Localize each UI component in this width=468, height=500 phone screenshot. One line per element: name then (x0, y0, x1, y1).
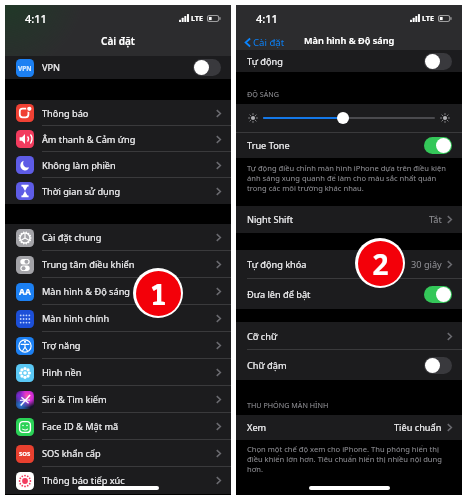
staticText: Màn hình & Độ sáng (42, 285, 130, 298)
button[interactable]: Xem (236, 415, 462, 440)
staticText: True Tone (247, 139, 290, 152)
staticText: Cài đặt (101, 34, 135, 48)
staticText: Tự động (247, 55, 283, 68)
button[interactable]: VPN (5, 56, 231, 79)
staticText: Chọn một chế độ xem cho iPhone. Thu phón… (247, 444, 456, 472)
button[interactable]: Chữ đậm (236, 350, 462, 380)
button[interactable]: True Tone (236, 132, 462, 158)
staticText: Thông báo tiếp xúc (42, 474, 125, 487)
staticText: Tắt (429, 213, 442, 226)
staticText: Âm thanh & Cảm ứng (42, 133, 136, 146)
staticText: Cài đặt chung (42, 231, 102, 244)
button[interactable]: Tự động khóa (236, 250, 462, 279)
button[interactable]: Thông báo (5, 100, 231, 126)
staticText: SOS khẩn cấp (42, 447, 101, 460)
button[interactable]: Turn off (424, 286, 452, 303)
staticText: Xem (247, 421, 267, 434)
button[interactable]: Face ID & Mật mã (5, 413, 231, 440)
staticText: 2 (372, 245, 389, 283)
staticText: Face ID & Mật mã (42, 420, 119, 433)
staticText: Đưa lên để bật (247, 288, 311, 301)
staticText: 4:11 (256, 11, 278, 26)
button[interactable]: SOS (5, 440, 231, 467)
staticText: LTE (422, 13, 435, 23)
button[interactable]: Siri & Tìm kiếm (5, 386, 231, 413)
staticText: Chữ đậm (247, 359, 287, 372)
button[interactable]: Turn off (424, 137, 452, 154)
staticText: Tự động điều chỉnh màn hình iPhone dựa t… (247, 163, 456, 193)
staticText: 30 giây (411, 258, 442, 271)
button[interactable]: Turn on (424, 53, 452, 70)
staticText: Tiêu chuẩn (394, 421, 442, 434)
staticText: 1 (150, 275, 167, 313)
staticText: Màn hình chính (42, 312, 110, 325)
button[interactable]: Turn on (193, 59, 221, 76)
button[interactable]: Thông báo tiếp xúc (5, 467, 231, 494)
button[interactable]: Âm thanh & Cảm ứng (5, 126, 231, 152)
staticText: SOS (19, 450, 31, 458)
staticText: Thời gian sử dụng (42, 185, 121, 198)
staticText: Hình nền (42, 366, 82, 379)
button[interactable]: Đưa lên để bật (236, 279, 462, 309)
staticText: Siri & Tìm kiếm (42, 393, 107, 406)
staticText: Không làm phiền (42, 159, 116, 172)
button[interactable]: Cỡ chữ (236, 322, 462, 350)
button[interactable]: Trợ năng (5, 332, 231, 359)
button[interactable]: Tự động (236, 50, 462, 72)
staticText: LTE (191, 13, 204, 23)
staticText: Thông báo (42, 107, 89, 120)
button[interactable]: Thời gian sử dụng (5, 178, 231, 204)
staticText: Trợ năng (42, 339, 81, 352)
staticText: ĐỘ SÁNG (247, 89, 279, 99)
button[interactable]: Night Shift (236, 206, 462, 233)
staticText: Trung tâm điều khiển (42, 258, 135, 271)
staticText: Night Shift (247, 213, 293, 226)
button[interactable]: Màn hình chính (5, 305, 231, 332)
button[interactable]: Turn on (424, 357, 452, 374)
button[interactable]: AA (5, 278, 231, 305)
staticText: Cỡ chữ (247, 330, 278, 343)
staticText: THU PHÓNG MÀN HÌNH (247, 400, 329, 410)
staticText: 4:11 (25, 11, 47, 26)
button[interactable]: Cài đặt chung (5, 224, 231, 251)
staticText: AA (19, 286, 31, 298)
button[interactable]: Hình nền (5, 359, 231, 386)
button[interactable]: Cài đặt (245, 36, 285, 49)
staticText: Màn hình & Độ sáng (304, 34, 395, 47)
button[interactable]: Không làm phiền (5, 152, 231, 178)
button[interactable]: Trung tâm điều khiển (5, 251, 231, 278)
staticText: VPN (42, 61, 61, 74)
staticText: VPN (18, 64, 32, 73)
staticText: Tự động khóa (247, 258, 307, 271)
staticText: Cài đặt (253, 36, 285, 49)
